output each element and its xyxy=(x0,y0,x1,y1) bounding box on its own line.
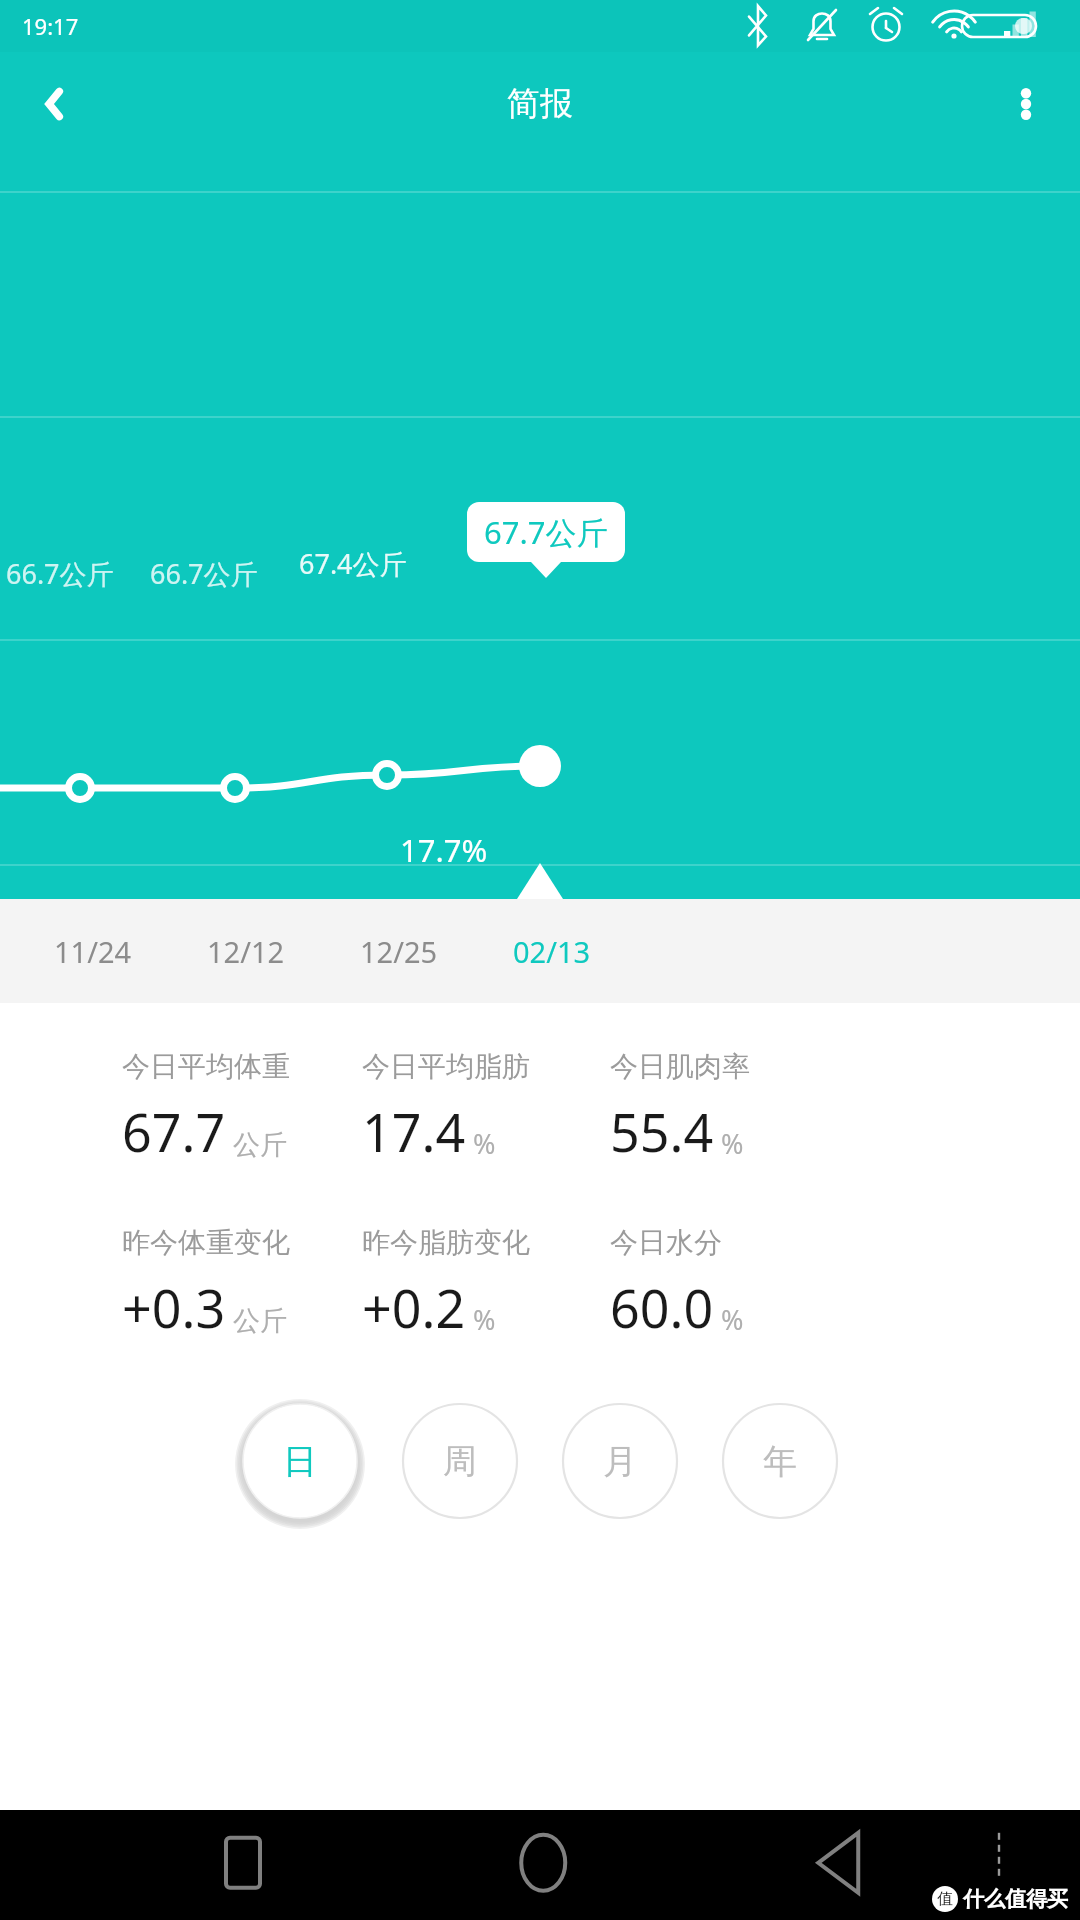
button[interactable]: 11/24 xyxy=(16,899,169,1003)
staticText: 值 xyxy=(937,1889,953,1909)
staticText: 简报 xyxy=(507,83,573,125)
button[interactable]: 12/12 xyxy=(169,899,322,1003)
staticText: 11/24 xyxy=(54,932,132,971)
staticText: 今日水分 xyxy=(610,1225,722,1260)
staticText: 周 xyxy=(443,1440,477,1483)
staticText: +0.3 xyxy=(122,1272,226,1343)
staticText: 今日平均脂肪 xyxy=(362,1049,530,1084)
staticText: 什么值得买 xyxy=(963,1886,1068,1912)
staticText: 67.4公斤 xyxy=(299,545,407,582)
button[interactable]: More options xyxy=(990,68,1062,140)
staticText: 67.7 xyxy=(122,1096,226,1167)
button[interactable]: Back xyxy=(20,68,92,140)
staticText: 年 xyxy=(763,1440,797,1483)
button[interactable]: 月 xyxy=(560,1401,680,1521)
staticText: 02/13 xyxy=(513,932,591,971)
button[interactable]: 12/25 xyxy=(322,899,475,1003)
staticText: 17.4 xyxy=(362,1096,466,1167)
button[interactable]: 年 xyxy=(720,1401,840,1521)
button[interactable]: 周 xyxy=(400,1401,520,1521)
staticText: 66.7公斤 xyxy=(6,555,114,592)
staticText: % xyxy=(473,1125,496,1162)
staticText: 月 xyxy=(603,1440,637,1483)
staticText: 公斤 xyxy=(233,1128,287,1162)
staticText: % xyxy=(473,1301,496,1338)
button[interactable]: 日 xyxy=(240,1401,360,1521)
staticText: 17.7% xyxy=(400,829,488,871)
staticText: % xyxy=(721,1125,744,1162)
staticText: 昨今脂肪变化 xyxy=(362,1225,530,1260)
staticText: 日 xyxy=(283,1440,317,1483)
staticText: +0.2 xyxy=(362,1272,466,1343)
staticText: 12/12 xyxy=(207,932,285,971)
staticText: 昨今体重变化 xyxy=(122,1225,290,1260)
button[interactable]: 02/13 xyxy=(475,899,628,1003)
staticText: 公斤 xyxy=(233,1304,287,1338)
staticText: 67.7公斤 xyxy=(484,511,608,553)
staticText: 66.7公斤 xyxy=(150,555,258,592)
staticText: 60.0 xyxy=(610,1272,714,1343)
staticText: 19:17 xyxy=(22,11,79,41)
staticText: 今日肌肉率 xyxy=(610,1049,750,1084)
staticText: % xyxy=(721,1301,744,1338)
staticText: 12/25 xyxy=(360,932,438,971)
staticText: 55.4 xyxy=(610,1096,714,1167)
staticText: 今日平均体重 xyxy=(122,1049,290,1084)
